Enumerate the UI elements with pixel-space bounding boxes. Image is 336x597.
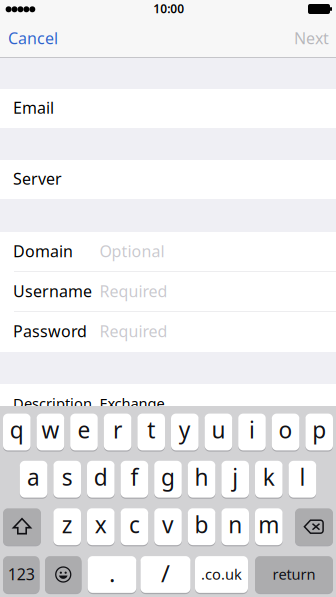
staticText: z	[62, 509, 73, 539]
button[interactable]: Cancel	[8, 18, 68, 58]
staticText: r	[113, 415, 122, 445]
button[interactable]: return	[255, 556, 333, 593]
button[interactable]: a	[20, 461, 47, 498]
button[interactable]: Delete	[295, 508, 333, 545]
staticText: Exchange	[99, 393, 164, 413]
staticText: l	[299, 462, 305, 492]
staticText: p	[312, 415, 326, 445]
button[interactable]: Email	[0, 89, 336, 128]
staticText: Password	[13, 320, 87, 342]
staticText: Required	[99, 320, 167, 342]
staticText: t	[147, 415, 155, 445]
staticText: o	[279, 415, 293, 445]
button[interactable]: v	[154, 508, 182, 545]
staticText: w	[41, 415, 59, 445]
button[interactable]: i	[238, 414, 266, 450]
staticText: s	[62, 462, 73, 492]
button[interactable]: x	[87, 508, 115, 545]
staticText: .co.uk	[201, 564, 242, 584]
staticText: i	[249, 415, 255, 445]
button[interactable]: 123	[3, 556, 39, 593]
staticText: Username	[13, 280, 92, 302]
button[interactable]: Emoji	[45, 556, 81, 593]
button[interactable]: r	[104, 414, 131, 450]
button[interactable]: p	[305, 414, 333, 450]
staticText: Server	[13, 168, 62, 189]
staticText: q	[10, 415, 24, 445]
button[interactable]: t	[137, 414, 165, 450]
button[interactable]: d	[87, 461, 115, 498]
button[interactable]: Description	[0, 384, 336, 406]
staticText: h	[195, 462, 209, 492]
staticText: Domain	[13, 240, 73, 262]
staticText: Cancel	[8, 27, 58, 49]
staticText: Required	[99, 280, 167, 302]
staticText: 10:00	[153, 0, 184, 16]
button[interactable]: s	[53, 461, 81, 498]
staticText: x	[95, 509, 107, 539]
button[interactable]: z	[53, 508, 81, 545]
staticText: v	[162, 509, 174, 539]
button[interactable]: .co.uk	[195, 556, 248, 593]
button[interactable]: f	[121, 461, 148, 498]
staticText: .	[109, 557, 115, 589]
staticText: b	[195, 509, 209, 539]
button[interactable]: w	[37, 414, 64, 450]
button[interactable]: c	[121, 508, 148, 545]
button[interactable]: Password	[0, 312, 336, 352]
staticText: a	[27, 462, 40, 492]
staticText: f	[130, 462, 138, 492]
button[interactable]: n	[221, 508, 249, 545]
button[interactable]: g	[154, 461, 182, 498]
staticText: u	[211, 415, 225, 445]
staticText: Description	[13, 393, 92, 413]
staticText: e	[77, 415, 90, 445]
button[interactable]: j	[221, 461, 249, 498]
staticText: Next	[294, 27, 329, 49]
staticText: Optional	[99, 240, 164, 262]
button[interactable]: q	[3, 414, 31, 450]
button[interactable]: k	[255, 461, 283, 498]
staticText: n	[228, 509, 242, 539]
button[interactable]: Next	[269, 18, 329, 58]
staticText: d	[94, 462, 108, 492]
staticText: c	[129, 509, 140, 539]
staticText: Email	[13, 97, 54, 118]
button[interactable]: o	[272, 414, 299, 450]
staticText: j	[232, 462, 238, 492]
staticText: g	[161, 462, 175, 492]
button[interactable]: Server	[0, 160, 336, 199]
button[interactable]: /	[140, 556, 190, 593]
button[interactable]: Shift	[3, 508, 41, 545]
staticText: /	[161, 557, 170, 589]
button[interactable]: Domain	[0, 232, 336, 272]
button[interactable]: .	[88, 556, 136, 593]
button[interactable]: b	[188, 508, 215, 545]
button[interactable]: h	[188, 461, 215, 498]
button[interactable]: l	[289, 461, 316, 498]
staticText: 123	[8, 563, 35, 585]
staticText: y	[179, 415, 191, 445]
staticText: k	[263, 462, 275, 492]
button[interactable]: m	[255, 508, 283, 545]
staticText: return	[272, 564, 315, 584]
button[interactable]: e	[70, 414, 98, 450]
button[interactable]: Username	[0, 272, 336, 312]
button[interactable]: y	[171, 414, 199, 450]
staticText: m	[258, 509, 279, 539]
button[interactable]: u	[205, 414, 232, 450]
